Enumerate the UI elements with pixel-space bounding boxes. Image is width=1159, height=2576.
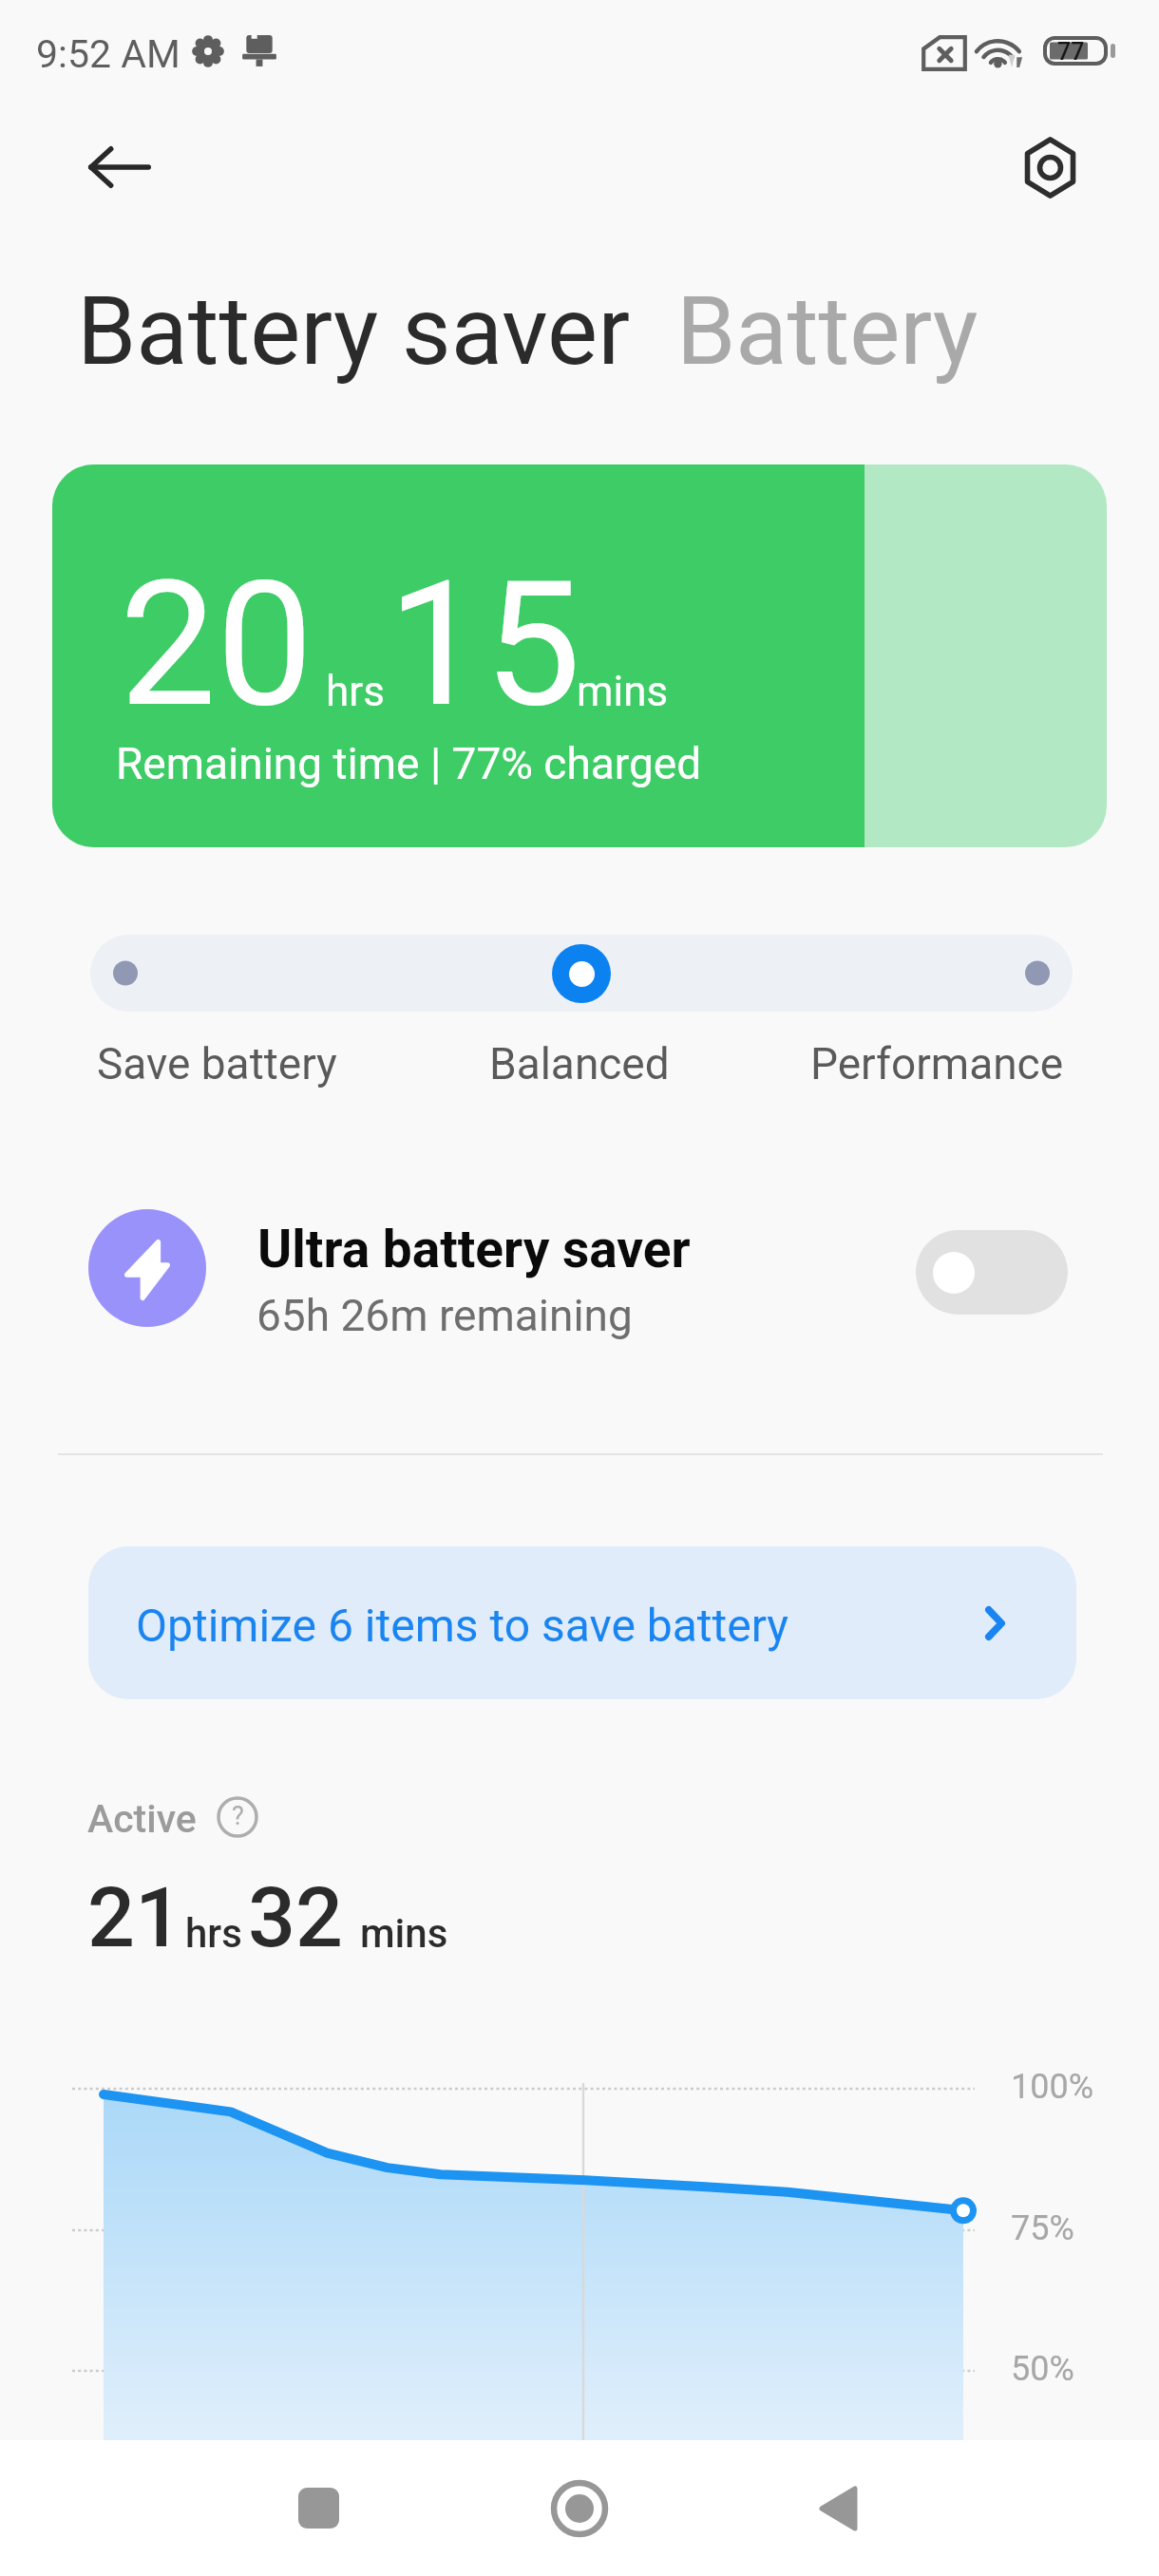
staticText: hrs bbox=[185, 1910, 242, 1957]
staticText: 75% bbox=[1011, 2208, 1074, 2248]
button[interactable] bbox=[916, 1230, 1068, 1315]
staticText: 9:52 AM bbox=[36, 31, 180, 77]
button[interactable]: Help bbox=[218, 1797, 257, 1837]
button[interactable]: Performance bbox=[0, 0, 254, 51]
staticText: hrs bbox=[326, 667, 385, 716]
button[interactable]: Back bbox=[72, 131, 167, 226]
button[interactable]: Save battery bbox=[0, 0, 240, 51]
button[interactable]: Home bbox=[513, 2461, 646, 2556]
button[interactable]: Balanced bbox=[0, 0, 180, 51]
staticText: ? bbox=[232, 1801, 244, 1831]
staticText: mins bbox=[577, 667, 669, 716]
staticText: Optimize 6 items to save battery bbox=[136, 1599, 789, 1652]
button[interactable]: Battery saver bbox=[0, 0, 554, 111]
staticText: 50% bbox=[1011, 2349, 1074, 2389]
button[interactable]: Settings bbox=[1003, 120, 1098, 215]
button[interactable] bbox=[552, 944, 611, 1003]
staticText: 15 bbox=[388, 544, 581, 746]
staticText: 65h 26m remaining bbox=[256, 1290, 633, 1341]
staticText: Remaining time | 77% charged bbox=[116, 738, 702, 789]
staticText: 21 bbox=[87, 1868, 183, 1966]
staticText: 32 bbox=[248, 1868, 344, 1966]
button[interactable] bbox=[0, 1195, 1159, 1341]
button[interactable]: Battery bbox=[0, 0, 302, 111]
button[interactable]: Back bbox=[772, 2461, 905, 2556]
staticText: Active bbox=[87, 1796, 197, 1842]
button[interactable]: Recent apps bbox=[252, 2461, 385, 2556]
button[interactable] bbox=[52, 464, 1107, 847]
staticText: 100% bbox=[1011, 2067, 1094, 2107]
staticText: 77 bbox=[1057, 38, 1085, 66]
button[interactable] bbox=[88, 1546, 1076, 1699]
staticText: Ultra battery saver bbox=[257, 1219, 691, 1279]
staticText: mins bbox=[360, 1910, 448, 1957]
staticText: 20 bbox=[120, 544, 313, 746]
